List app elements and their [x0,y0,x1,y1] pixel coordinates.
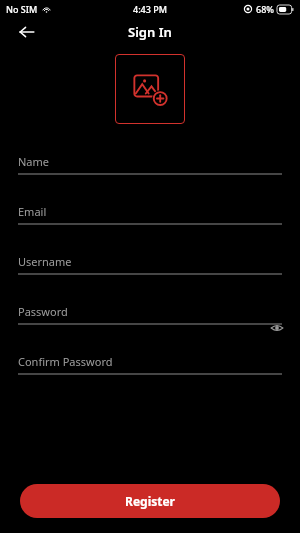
button[interactable]: Confirm Password [0,345,300,395]
staticText: Password [18,304,68,319]
button[interactable]: Name [0,145,300,195]
button[interactable]: Username [0,245,300,295]
button[interactable]: Add photo [115,54,185,124]
staticText: 68% [256,3,274,15]
button[interactable]: Password [0,295,300,345]
staticText: Username [18,254,72,269]
button[interactable]: Email [0,195,300,245]
staticText: Name [18,154,50,169]
button[interactable]: Register [20,484,280,518]
staticText: No SIM [6,3,38,15]
staticText: Register [125,493,175,509]
staticText: 4:43 PM [133,3,167,15]
button[interactable]: Toggle password visibility [268,319,286,337]
staticText: Confirm Password [18,354,113,369]
staticText: Sign In [128,23,172,41]
staticText: Email [18,204,47,219]
button[interactable]: Back [12,18,42,46]
